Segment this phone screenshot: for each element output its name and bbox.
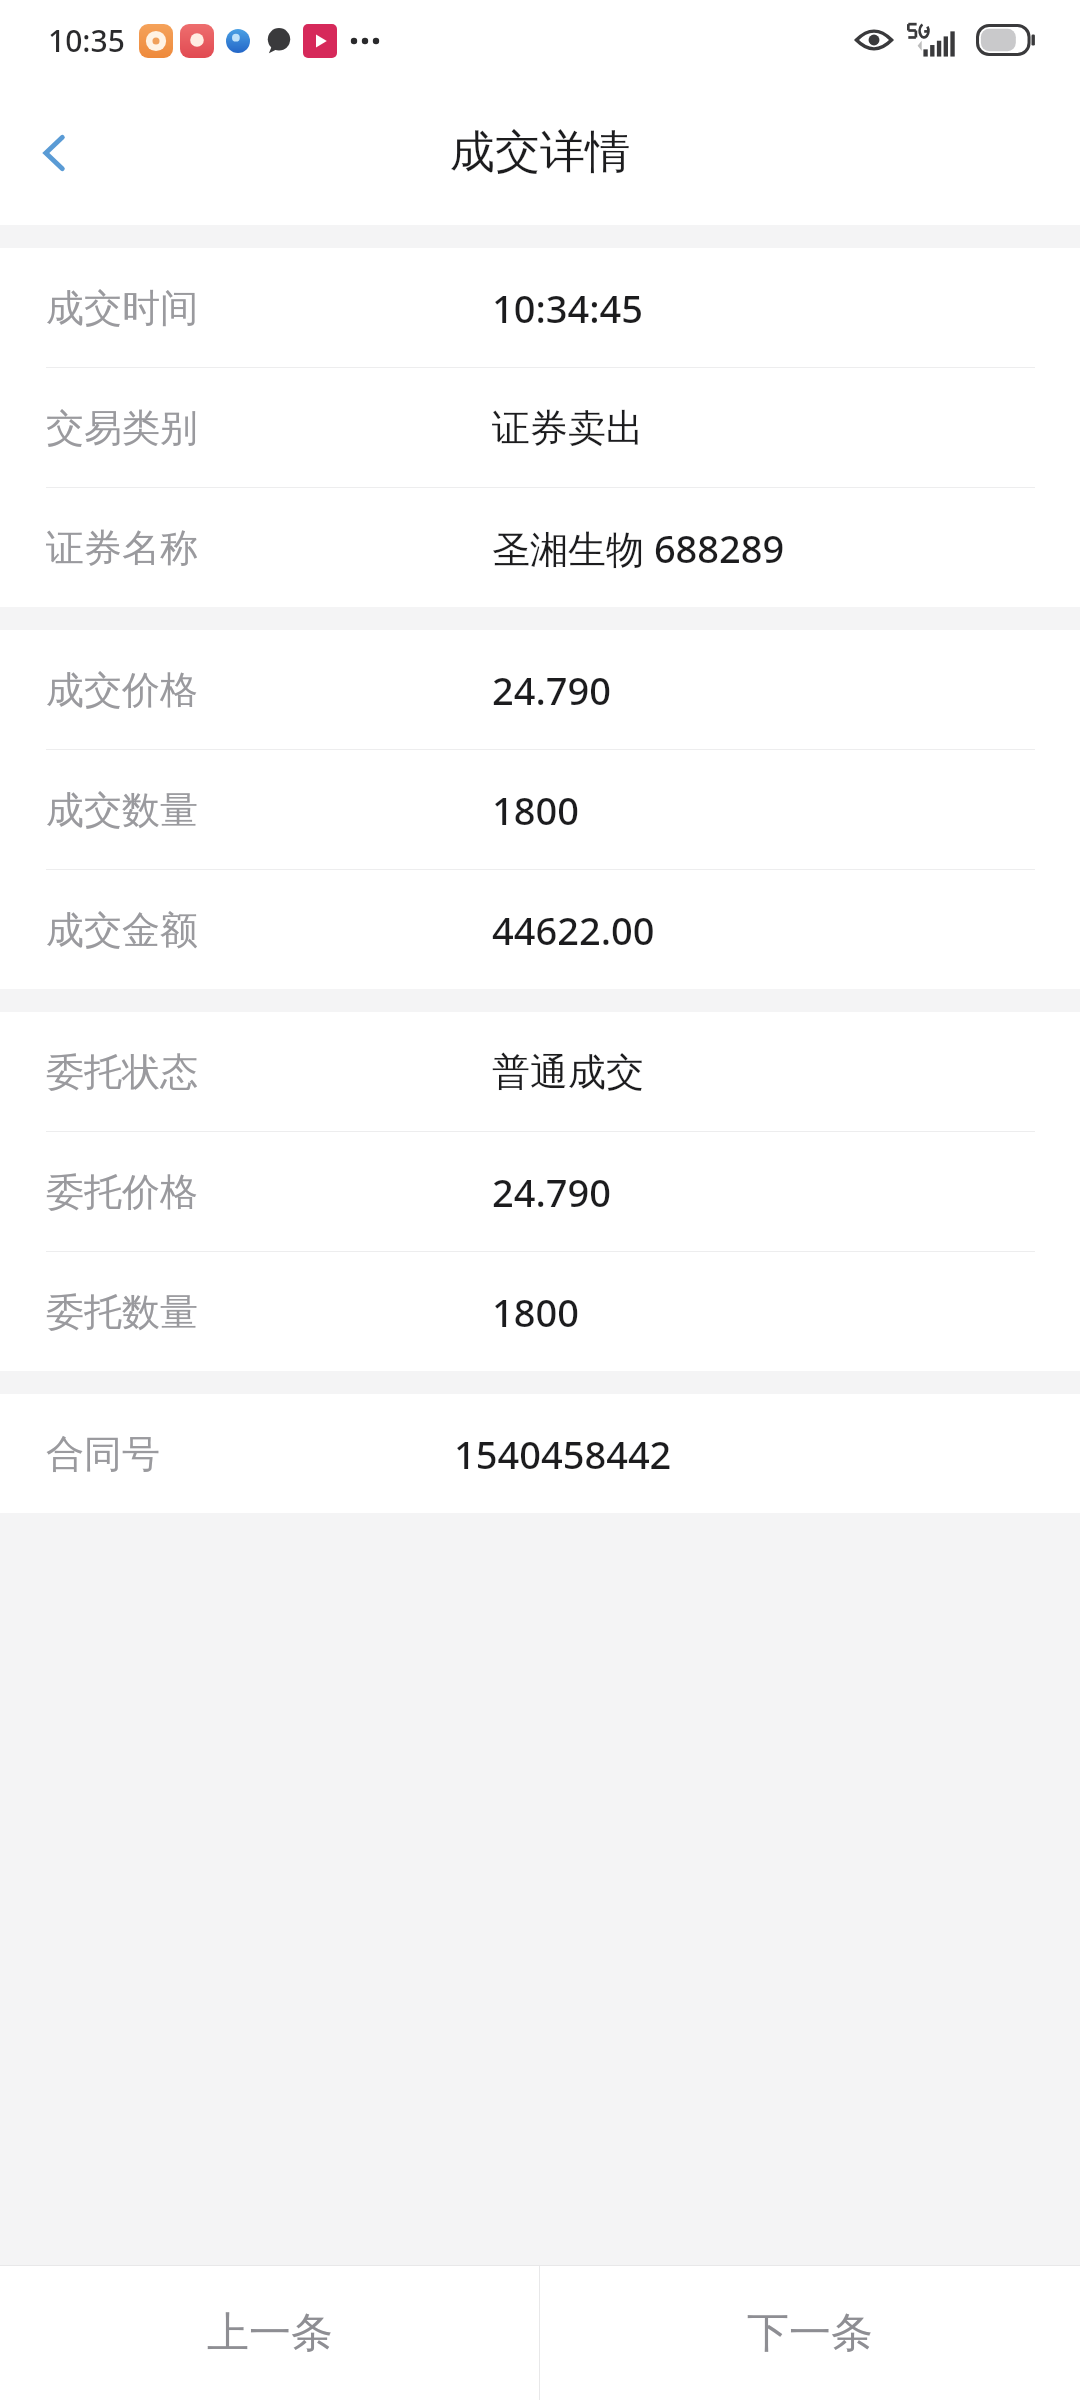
staticText: 委托价格: [46, 1168, 198, 1216]
staticText: 合同号: [46, 1430, 160, 1478]
staticText: 1800: [492, 784, 579, 836]
button[interactable]: 合同号: [0, 1394, 1080, 1513]
staticText: 下一条: [747, 2307, 873, 2360]
staticText: 10:35: [48, 20, 125, 61]
staticText: 圣湘生物 688289: [492, 522, 785, 574]
staticText: 委托状态: [46, 1048, 198, 1096]
button[interactable]: 成交金额: [0, 870, 1080, 989]
staticText: 普通成交: [492, 1048, 644, 1096]
staticText: 10:34:45: [492, 282, 644, 334]
button[interactable]: 委托数量: [0, 1252, 1080, 1371]
staticText: 成交数量: [46, 786, 198, 834]
button[interactable]: 成交价格: [0, 630, 1080, 749]
button[interactable]: 证券名称: [0, 488, 1080, 607]
staticText: 证券卖出: [492, 404, 644, 452]
staticText: 1800: [492, 1286, 579, 1338]
staticText: 成交时间: [46, 284, 198, 332]
staticText: 成交详情: [450, 124, 630, 181]
button[interactable]: 委托价格: [0, 1132, 1080, 1251]
button[interactable]: 委托状态: [0, 1012, 1080, 1131]
staticText: 交易类别: [46, 404, 198, 452]
staticText: 44622.00: [492, 904, 655, 956]
button[interactable]: 成交数量: [0, 750, 1080, 869]
staticText: 证券名称: [46, 524, 198, 572]
button[interactable]: 下一条: [540, 2266, 1080, 2400]
staticText: 24.790: [492, 664, 612, 716]
button[interactable]: 成交时间: [0, 248, 1080, 367]
staticText: 成交金额: [46, 906, 198, 954]
staticText: 上一条: [207, 2307, 333, 2360]
staticText: 24.790: [492, 1166, 612, 1218]
staticText: 委托数量: [46, 1288, 198, 1336]
button[interactable]: 上一条: [0, 2266, 539, 2400]
staticText: 成交价格: [46, 666, 198, 714]
button[interactable]: 返回: [0, 98, 110, 208]
staticText: 1540458442: [454, 1428, 672, 1480]
button[interactable]: 交易类别: [0, 368, 1080, 487]
